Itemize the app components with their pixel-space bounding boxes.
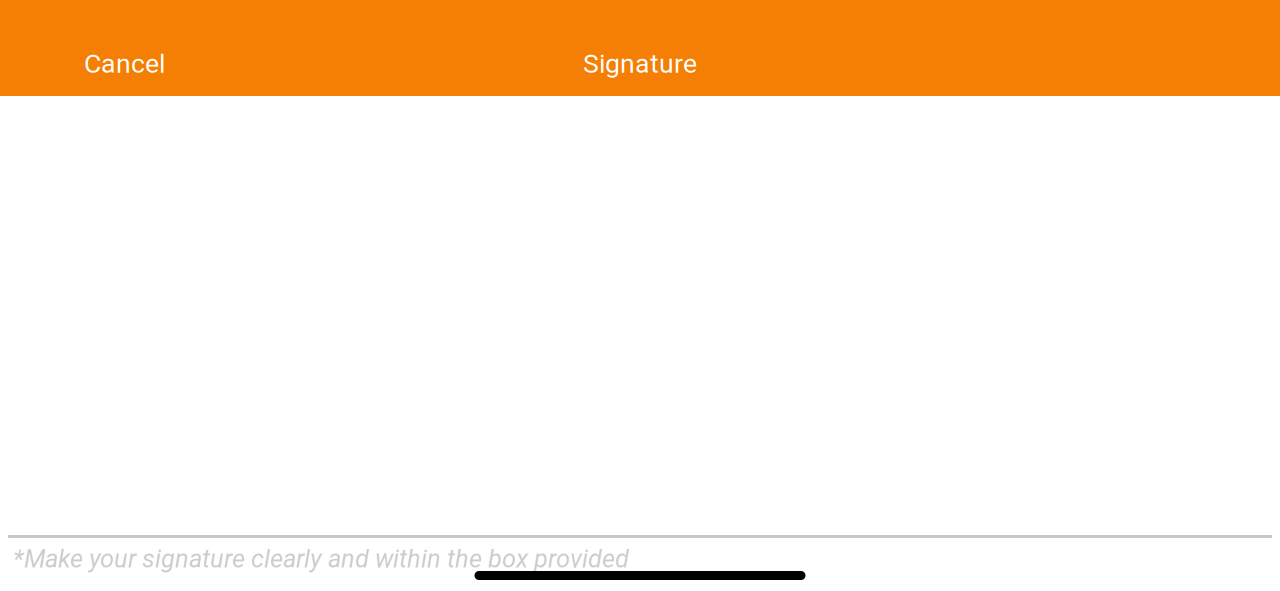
button[interactable]: Cancel xyxy=(72,38,177,89)
staticText: Cancel xyxy=(84,48,165,79)
staticText: *Make your signature clearly and within … xyxy=(13,544,629,574)
staticText: Signature xyxy=(583,48,697,79)
